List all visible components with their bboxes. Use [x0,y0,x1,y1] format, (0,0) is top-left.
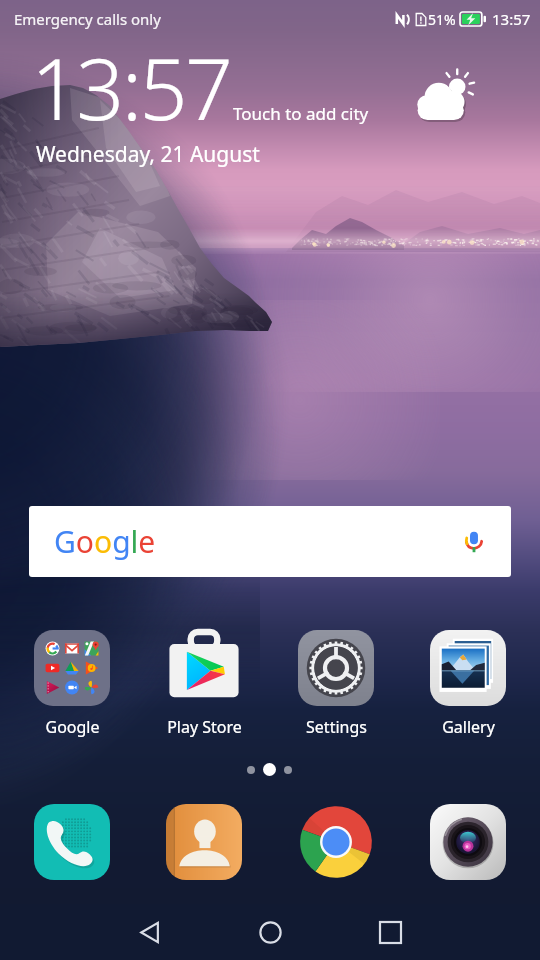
staticText: Touch to add city [233,102,369,125]
other: Voice search [460,528,488,556]
staticText: Gallery [442,716,495,738]
button[interactable]: Settings [276,626,396,738]
staticText: 13:57 [31,30,231,122]
button[interactable]: Google [12,626,132,738]
button[interactable]: Home [240,904,300,960]
staticText: Google [54,521,156,562]
button[interactable]: 13:57 [31,30,231,122]
button[interactable]: Touch to add city [233,102,369,125]
staticText: Emergency calls only [14,9,161,29]
staticText: Google [45,716,100,738]
other: Camera [430,804,506,880]
button[interactable]: Play Store [144,626,264,738]
other: Chrome [298,804,374,880]
other: Phone [34,804,110,880]
button[interactable]: Contacts [166,804,242,880]
staticText: 13:57 [492,9,531,29]
button[interactable]: Back [120,904,180,960]
staticText: Settings [306,716,367,738]
button[interactable]: Phone [34,804,110,880]
other: Weather [414,66,480,132]
staticText: Play Store [167,716,242,738]
button[interactable]: Camera [430,804,506,880]
button[interactable]: Wednesday, 21 August [36,140,260,169]
button[interactable]: Chrome [298,804,374,880]
staticText: Wednesday, 21 August [36,140,260,169]
button[interactable]: Google [29,506,511,577]
staticText: 51% [428,10,456,29]
button[interactable]: Gallery [408,626,528,738]
other: Contacts [166,804,242,880]
button[interactable]: Recent apps [360,904,420,960]
